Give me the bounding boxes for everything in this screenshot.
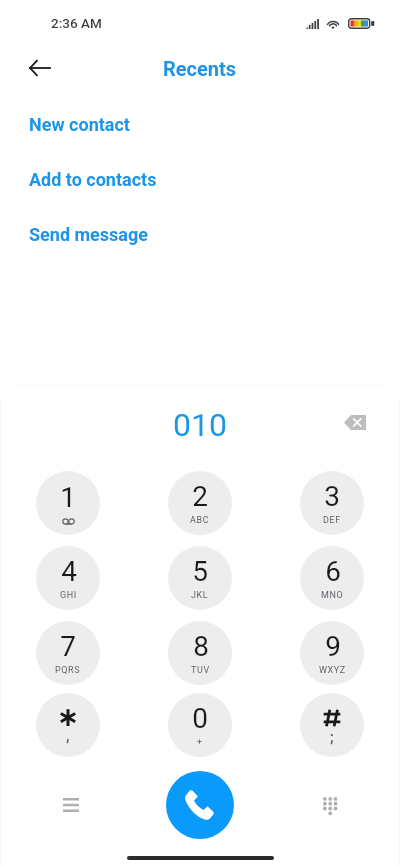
button[interactable]: 9	[300, 621, 364, 685]
staticText: 2:36 AM	[51, 15, 102, 31]
button[interactable]: Back	[16, 44, 64, 92]
staticText: 010	[173, 406, 227, 444]
staticText: Send message	[29, 224, 148, 245]
staticText: +	[197, 737, 203, 748]
staticText: DEF	[323, 515, 341, 526]
staticText: WXYZ	[319, 665, 346, 676]
button[interactable]: 6	[300, 546, 364, 610]
staticText: 7	[60, 630, 76, 663]
staticText: MNO	[321, 590, 344, 601]
button[interactable]: New contact	[0, 97, 400, 152]
staticText: Recents	[163, 57, 237, 80]
button[interactable]: 8	[168, 621, 232, 685]
staticText: TUV	[191, 665, 210, 676]
staticText: ;	[330, 729, 334, 745]
button[interactable]: ;	[300, 693, 364, 757]
staticText: GHI	[60, 590, 77, 601]
staticText: 2	[192, 480, 208, 513]
button[interactable]: Backspace	[331, 398, 379, 446]
button[interactable]: 2	[168, 471, 232, 535]
button[interactable]: Call	[166, 771, 234, 839]
staticText: PQRS	[55, 665, 81, 676]
staticText: ABC	[190, 515, 210, 526]
staticText: JKL	[191, 590, 209, 601]
staticText: Add to contacts	[29, 169, 157, 190]
button[interactable]: 1	[36, 471, 100, 535]
button[interactable]: Add to contacts	[0, 152, 400, 207]
staticText: 3	[324, 480, 340, 513]
button[interactable]: Menu	[47, 781, 95, 829]
staticText: ,	[66, 728, 70, 744]
staticText: 0	[192, 702, 208, 735]
button[interactable]: 0	[168, 693, 232, 757]
button[interactable]: ,	[36, 693, 100, 757]
staticText: 5	[192, 555, 208, 588]
staticText: 6	[325, 555, 341, 588]
button[interactable]: Send message	[0, 207, 400, 262]
button[interactable]: 7	[36, 621, 100, 685]
button[interactable]: 3	[300, 471, 364, 535]
staticText: 1	[60, 481, 76, 514]
button[interactable]: Dialpad	[306, 782, 354, 830]
staticText: New contact	[29, 114, 130, 135]
staticText: 9	[325, 630, 341, 663]
staticText: 8	[193, 630, 209, 663]
staticText: 4	[61, 555, 77, 588]
button[interactable]: 4	[36, 546, 100, 610]
button[interactable]: 5	[168, 546, 232, 610]
